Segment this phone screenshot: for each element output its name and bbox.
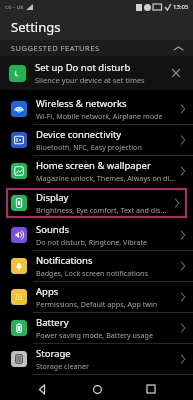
staticText: Battery — [36, 316, 69, 329]
staticText: Wi-Fi, Mobile network, Airplane mode — [36, 111, 163, 121]
staticText: Magazine unlock, Themes, Always on displ… — [36, 173, 176, 183]
staticText: Wireless & networks — [36, 97, 127, 110]
button[interactable]: Display — [6, 188, 187, 218]
button[interactable]: Battery — [0, 313, 193, 343]
button[interactable]: Notifications — [0, 251, 193, 281]
button[interactable]: Home — [84, 378, 110, 400]
button[interactable]: Sounds — [0, 220, 193, 250]
button[interactable]: Digital balance — [0, 375, 193, 400]
button[interactable]: Home screen & wallpaper — [0, 156, 193, 186]
staticText: Home screen & wallpaper — [36, 159, 151, 172]
staticText: Display — [36, 191, 69, 204]
staticText: 13:05 — [173, 3, 189, 11]
button[interactable]: Storage — [0, 344, 193, 374]
staticText: Notifications — [36, 254, 93, 267]
staticText: Silence your device at set times — [35, 75, 145, 85]
staticText: Apps — [36, 285, 59, 298]
button[interactable]: Device connectivity — [0, 125, 193, 155]
button[interactable]: Set up Do not disturb — [0, 56, 193, 90]
staticText: Storage cleaner — [36, 361, 89, 371]
staticText: Bluetooth, NFC, Easy projection — [36, 142, 142, 152]
staticText: Sounds — [36, 223, 70, 236]
button[interactable]: Back — [29, 378, 55, 400]
staticText: Settings — [11, 18, 61, 36]
button[interactable]: Dismiss suggestion — [167, 64, 185, 82]
staticText: Brightness, Eye comfort, Text and displa… — [36, 205, 170, 215]
button[interactable]: Recent apps — [138, 378, 164, 400]
staticText: Digital balance — [36, 381, 103, 394]
staticText: Badges, Lock screen notifications — [36, 268, 148, 278]
staticText: SUGGESTED FEATURES — [11, 43, 100, 53]
staticText: Permissions, Default apps, App twin — [36, 299, 158, 309]
staticText: Do not disturb, Ringtone, Vibrate — [36, 237, 148, 247]
button[interactable]: Wireless & networks — [0, 94, 193, 124]
button[interactable]: SUGGESTED FEATURES — [0, 40, 193, 56]
staticText: Device connectivity — [36, 128, 122, 141]
staticText: Power saving mode, Battery usage — [36, 330, 153, 340]
staticText: co - uk — [5, 3, 24, 11]
button[interactable]: Apps — [0, 282, 193, 312]
staticText: Set up Do not disturb — [35, 61, 131, 74]
staticText: Storage — [36, 347, 71, 360]
